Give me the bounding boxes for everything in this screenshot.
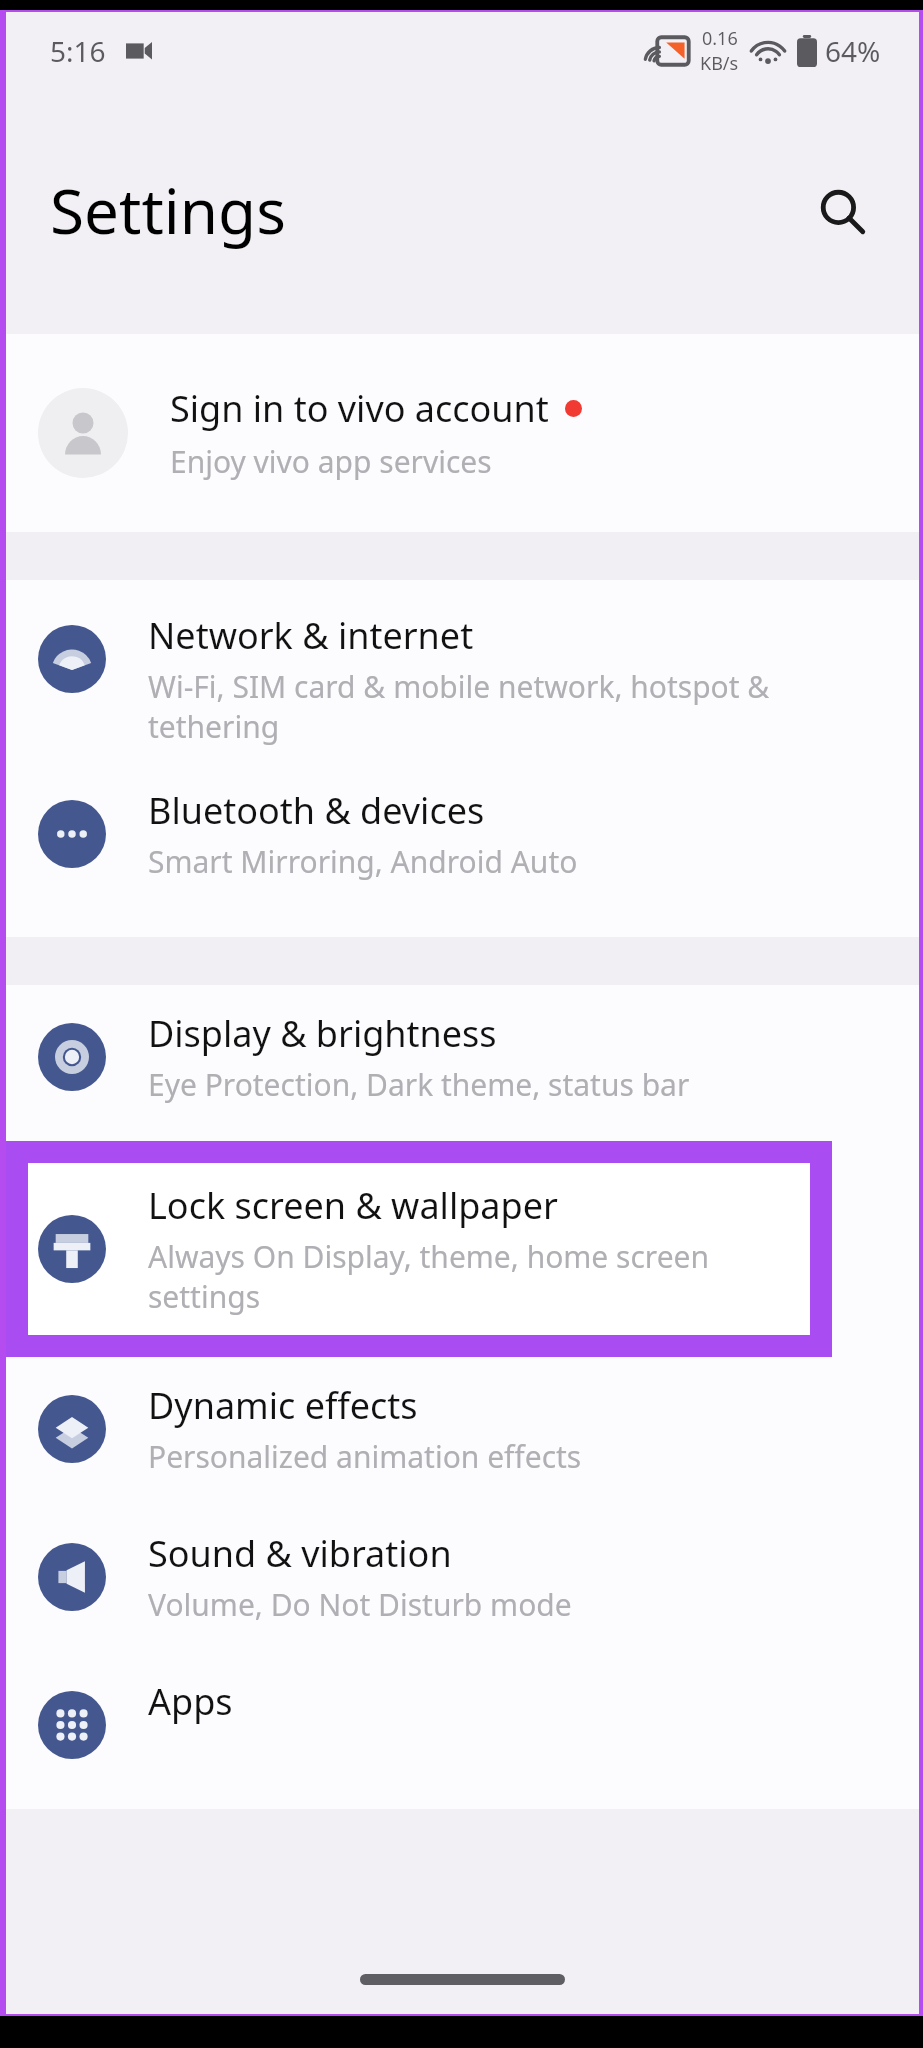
staticText: Personalized animation effects: [148, 1436, 582, 1477]
button[interactable]: Display & brightness: [6, 985, 919, 1133]
staticText: Always On Display, theme, home screen se…: [148, 1236, 809, 1317]
staticText: Sign in to vivo account: [170, 384, 549, 433]
staticText: Enjoy vivo app services: [170, 441, 492, 482]
staticText: KB/s: [700, 51, 739, 76]
staticText: Lock screen & wallpaper: [148, 1181, 558, 1230]
staticText: Eye Protection, Dark theme, status bar: [148, 1064, 690, 1105]
staticText: Smart Mirroring, Android Auto: [148, 841, 578, 882]
staticText: Bluetooth & devices: [148, 786, 485, 835]
button[interactable]: Bluetooth & devices: [6, 762, 919, 937]
staticText: Sound & vibration: [148, 1529, 452, 1578]
staticText: 64%: [825, 32, 881, 70]
button[interactable]: Lock screen & wallpaper: [6, 1133, 919, 1365]
staticText: Apps: [148, 1677, 233, 1726]
staticText: Volume, Do Not Disturb mode: [148, 1584, 572, 1625]
staticText: 5:16: [50, 32, 106, 70]
button[interactable]: Search: [797, 166, 889, 258]
button[interactable]: Apps: [6, 1661, 919, 1809]
staticText: Display & brightness: [148, 1009, 497, 1058]
staticText: Dynamic effects: [148, 1381, 418, 1430]
staticText: Wi-Fi, SIM card & mobile network, hotspo…: [148, 666, 859, 747]
button[interactable]: Sign in to vivo account: [6, 334, 919, 532]
staticText: 0.16: [702, 26, 738, 51]
button[interactable]: Sound & vibration: [6, 1513, 919, 1661]
button[interactable]: Dynamic effects: [6, 1365, 919, 1513]
button[interactable]: Network & internet: [6, 580, 919, 762]
staticText: Network & internet: [148, 611, 474, 660]
staticText: Settings: [50, 168, 286, 252]
